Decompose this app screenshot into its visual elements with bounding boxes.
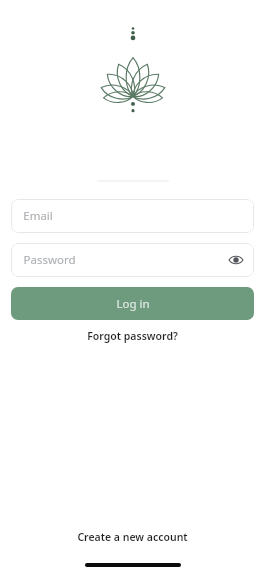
button[interactable]: Show password [226,250,246,270]
button[interactable]: Create a new account [69,527,196,547]
staticText: Password [23,252,76,268]
button[interactable]: Email [11,199,254,233]
button[interactable]: Password [11,243,254,277]
staticText: Create a new account [77,530,188,544]
button[interactable]: Log in [11,287,254,320]
button[interactable]: Forgot password? [81,327,184,345]
staticText: Email [23,208,53,224]
staticText: Forgot password? [87,329,178,343]
staticText: Log in [116,296,150,312]
